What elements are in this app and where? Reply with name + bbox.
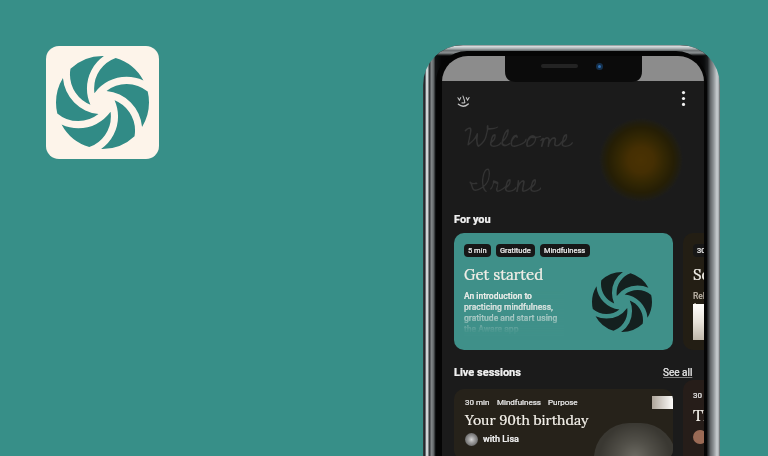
staticText: Purpose <box>548 398 578 407</box>
staticText: Mindfulness <box>497 398 541 407</box>
staticText: An introduction to practicing mindfulnes… <box>464 291 564 334</box>
button[interactable]: 30 min <box>465 398 490 407</box>
staticText: Gratitude <box>500 246 531 255</box>
button[interactable]: Purpose <box>548 398 578 407</box>
staticText: 30 min <box>693 391 704 400</box>
button[interactable]: Profile <box>455 92 472 109</box>
button[interactable]: 30 min <box>693 244 704 257</box>
staticText: For you <box>454 213 491 226</box>
button[interactable]: More options <box>674 89 692 107</box>
staticText: Live sessions <box>454 366 521 379</box>
button[interactable]: 30 min <box>683 380 704 456</box>
staticText: Relax and unwind for a few minutes anywh… <box>693 291 704 323</box>
button[interactable]: Mindfulness <box>540 244 590 257</box>
staticText: Welcome <box>464 108 573 167</box>
staticText: 30 min <box>465 398 490 407</box>
staticText: Your 90th birthday <box>465 411 589 429</box>
staticText: Get started <box>464 265 544 284</box>
staticText: Irene <box>469 153 541 199</box>
button[interactable]: 5 min <box>454 233 673 350</box>
button[interactable]: Gratitude <box>496 244 535 257</box>
staticText: 5 min <box>468 246 487 255</box>
staticText: See all <box>663 367 693 379</box>
button[interactable]: See all <box>663 367 693 379</box>
staticText: Sounds <box>693 265 704 284</box>
staticText: with Lisa <box>483 434 519 445</box>
button[interactable]: 5 min <box>464 244 491 257</box>
staticText: 30 min <box>697 246 704 255</box>
button[interactable]: 30 min <box>454 389 673 456</box>
button[interactable]: 30 min <box>683 233 704 350</box>
button[interactable]: Mindfulness <box>497 398 541 407</box>
staticText: Mindfulness <box>544 246 586 255</box>
staticText: The secret <box>693 405 704 425</box>
button[interactable]: 30 min <box>693 391 704 400</box>
button[interactable]: Aware app icon <box>46 46 159 159</box>
